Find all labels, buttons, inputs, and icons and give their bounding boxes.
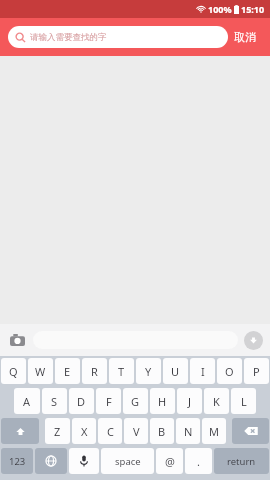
staticText: J [188, 394, 192, 409]
button[interactable]: Hide keyboard [244, 331, 263, 350]
button[interactable]: Shift [1, 418, 39, 444]
button[interactable]: G [123, 388, 148, 414]
button[interactable]: D [69, 388, 94, 414]
button[interactable]: C [98, 418, 122, 444]
button[interactable]: @ [156, 448, 183, 474]
button[interactable]: W [28, 358, 53, 384]
button[interactable]: V [124, 418, 148, 444]
button[interactable]: M [202, 418, 226, 444]
button[interactable]: N [176, 418, 200, 444]
button[interactable]: X [72, 418, 96, 444]
staticText: T [118, 364, 125, 379]
button[interactable]: P [244, 358, 269, 384]
staticText: 取消 [234, 30, 256, 44]
button[interactable]: 取消 [228, 26, 262, 48]
staticText: C [107, 424, 114, 439]
staticText: M [209, 424, 219, 439]
staticText: A [23, 394, 31, 409]
staticText: U [171, 364, 180, 379]
staticText: Y [145, 364, 152, 379]
button[interactable]: Q [1, 358, 26, 384]
staticText: R [91, 364, 98, 379]
button[interactable]: return [214, 448, 269, 474]
button[interactable]: space [101, 448, 154, 474]
staticText: V [133, 424, 140, 439]
staticText: Z [54, 424, 61, 439]
staticText: space [115, 455, 141, 468]
button[interactable]: L [231, 388, 256, 414]
staticText: P [253, 364, 260, 379]
staticText: I [201, 364, 205, 379]
button[interactable]: I [190, 358, 215, 384]
staticText: O [225, 364, 234, 379]
button[interactable]: B [150, 418, 174, 444]
button[interactable]: Z [45, 418, 70, 444]
button[interactable]: . [185, 448, 212, 474]
staticText: W [35, 364, 46, 379]
button[interactable]: R [82, 358, 107, 384]
staticText: . [197, 454, 200, 469]
button[interactable]: Change language [35, 448, 67, 474]
staticText: K [213, 394, 220, 409]
staticText: N [184, 424, 193, 439]
staticText: G [131, 394, 140, 409]
staticText: E [64, 364, 71, 379]
staticText: 123 [9, 455, 26, 468]
button[interactable]: Backspace [232, 418, 269, 444]
button[interactable]: E [55, 358, 80, 384]
staticText: H [158, 394, 167, 409]
staticText: B [158, 424, 166, 439]
button[interactable]: T [109, 358, 134, 384]
button[interactable]: J [177, 388, 202, 414]
button[interactable]: U [163, 358, 188, 384]
staticText: S [51, 394, 58, 409]
staticText: X [81, 424, 88, 439]
button[interactable]: Voice input [69, 448, 99, 474]
staticText: L [241, 394, 247, 409]
button[interactable]: S [42, 388, 67, 414]
staticText: Q [9, 364, 18, 379]
button[interactable]: K [204, 388, 229, 414]
button[interactable]: H [150, 388, 175, 414]
button[interactable]: Y [136, 358, 161, 384]
button[interactable]: 123 [1, 448, 33, 474]
button[interactable]: 请输入需要查找的字 [8, 26, 228, 48]
staticText: 100% [208, 3, 232, 15]
button[interactable]: F [96, 388, 121, 414]
staticText: 请输入需要查找的字 [30, 32, 107, 43]
staticText: F [106, 394, 112, 409]
button[interactable]: Camera [7, 330, 27, 350]
staticText: 15:10 [241, 3, 265, 15]
staticText: return [227, 455, 256, 468]
button[interactable]: A [14, 388, 40, 414]
staticText: D [77, 394, 86, 409]
button[interactable]: O [217, 358, 242, 384]
staticText: @ [165, 454, 175, 469]
